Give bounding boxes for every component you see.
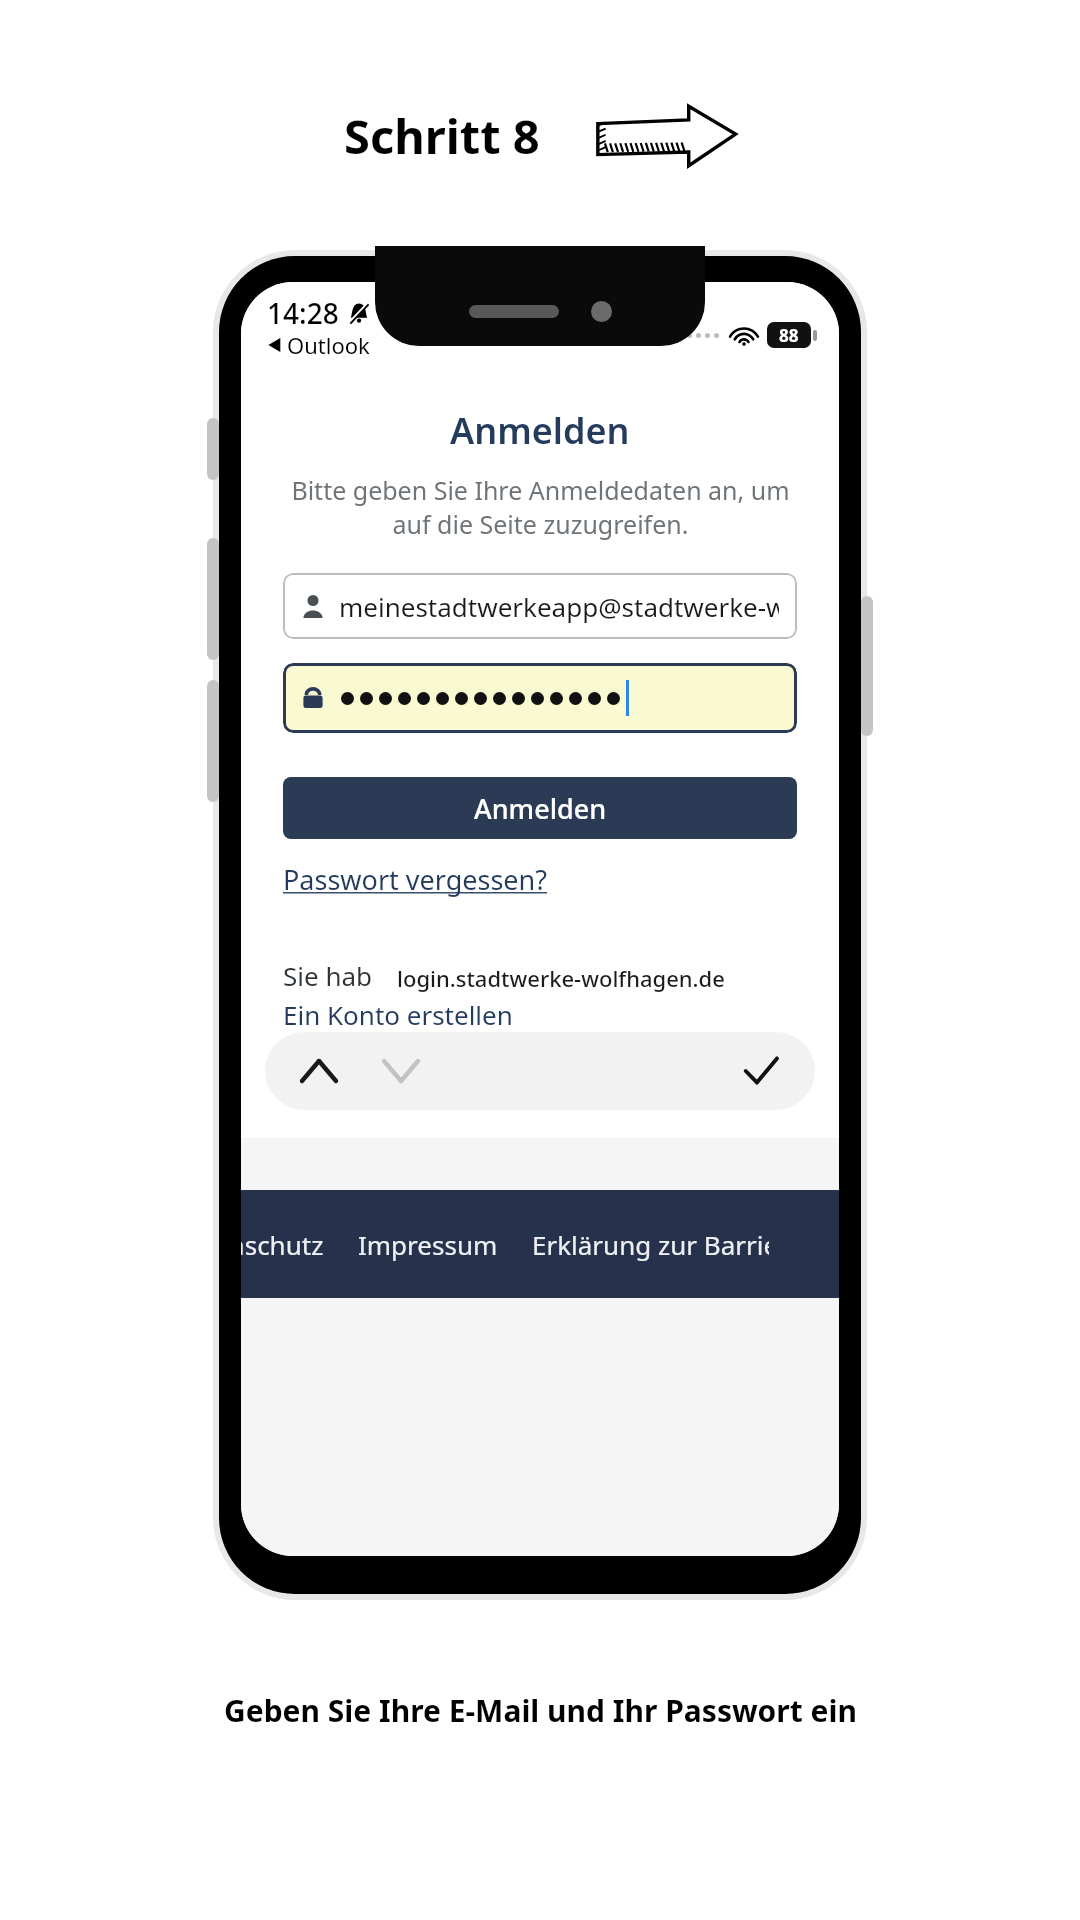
staticText: Schritt 8 <box>344 104 540 168</box>
staticText: login.stadtwerke-wolfhagen.de <box>397 963 725 993</box>
button[interactable]: Erklärung zur Barrierefreiheit <box>532 1227 769 1262</box>
staticText: Anmelden <box>474 790 607 827</box>
button[interactable]: Ein Konto erstellen <box>283 997 513 1030</box>
button[interactable] <box>283 663 797 733</box>
staticText: Bitte geben Sie Ihre Anmeldedaten an, um… <box>291 473 790 541</box>
staticText: Outlook <box>287 330 370 360</box>
staticText: 14:28 <box>267 294 339 332</box>
button[interactable]: Anmelden <box>283 777 797 839</box>
staticText: Sie haben noch kein Konto? <box>283 958 620 993</box>
button[interactable]: Datenschutz <box>241 1227 324 1262</box>
button[interactable]: Passwort vergessen? <box>283 861 547 898</box>
staticText: Anmelden <box>450 406 630 455</box>
button[interactable]: Fertig <box>737 1047 785 1095</box>
staticText: 88 <box>779 324 799 347</box>
staticText: Geben Sie Ihre E-Mail und Ihr Passwort e… <box>224 1690 857 1731</box>
staticText: meinestadtwerkeapp@stadtwerke-wolfhagen.… <box>339 589 779 624</box>
button[interactable]: meinestadtwerkeapp@stadtwerke-wolfhagen.… <box>283 573 797 639</box>
button[interactable]: Nächstes Feld <box>377 1047 425 1095</box>
button[interactable]: Vorheriges Feld <box>295 1047 343 1095</box>
button[interactable]: Impressum <box>358 1227 498 1262</box>
